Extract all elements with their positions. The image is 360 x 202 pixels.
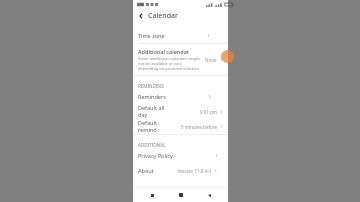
staticText: None [205,57,217,63]
button[interactable]: Back [200,188,218,202]
button[interactable]: Privacy Policy [133,148,228,163]
staticText: Time zone [138,32,165,39]
button[interactable]: Time zone [133,28,228,43]
staticText: 9:01 pm [199,109,217,115]
staticText: Version 11.8.4.0 [177,168,211,174]
staticText: Additional calendar [138,48,190,55]
button[interactable]: Default all day reminder time [133,104,228,119]
button[interactable]: Back [133,8,148,23]
button[interactable]: Recents [143,188,161,202]
button[interactable]: About [133,163,228,178]
staticText: Reminders [138,93,166,100]
staticText: REMINDERS [138,83,164,89]
staticText: Default reminder time [138,119,159,134]
button[interactable]: Home [172,188,190,202]
button[interactable]: Default reminder time [133,119,228,134]
staticText: About [138,167,154,174]
staticText: ADDITIONAL [138,142,166,148]
staticText: Privacy Policy [138,152,173,159]
staticText: Some additional calendars might not be a… [138,56,203,71]
staticText: 5 minutes before [180,124,217,130]
button[interactable]: Reminders [133,89,228,104]
staticText: Default all day reminder time [138,104,168,119]
button[interactable]: Additional calendar [133,44,228,75]
staticText: Calendar [148,11,179,21]
